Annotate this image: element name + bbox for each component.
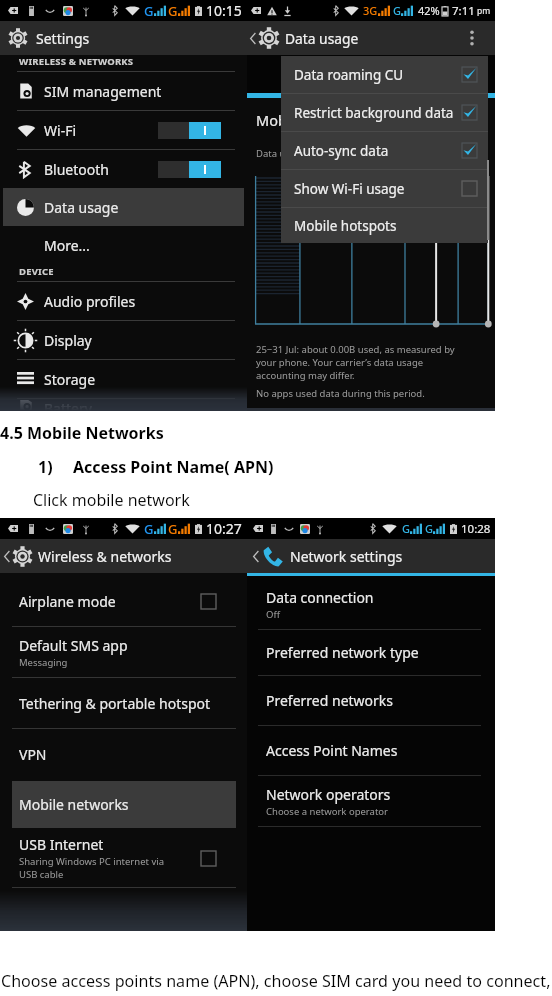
staticText: Click mobile network — [33, 489, 190, 511]
button[interactable]: Auto-sync data — [281, 132, 488, 169]
button[interactable]: Battery — [0, 399, 247, 411]
staticText: USB Internet — [19, 835, 104, 854]
button[interactable] — [158, 122, 221, 139]
button[interactable]: Default SMS app — [0, 627, 247, 677]
button[interactable]: Data connection — [258, 580, 495, 629]
button[interactable]: Storage — [0, 360, 247, 398]
staticText: Storage — [44, 370, 96, 389]
staticText: G — [168, 2, 178, 20]
staticText: Preferred networks — [266, 691, 394, 710]
staticText: Show Wi-Fi usage — [294, 180, 405, 198]
staticText: Access Point Name( APN) — [73, 456, 274, 478]
button[interactable]: Data roaming CU — [281, 56, 488, 93]
staticText: 7:11 — [452, 3, 475, 19]
staticText: DEVICE — [19, 265, 54, 278]
staticText: Settings — [36, 29, 90, 48]
staticText: Data usage cycle — [256, 147, 331, 160]
button[interactable]: SIM management — [0, 72, 247, 110]
staticText: Data usage — [44, 198, 119, 217]
staticText: More... — [44, 236, 90, 255]
staticText: Wireless & networks — [38, 547, 172, 566]
button[interactable]: Wi-Fi — [0, 111, 247, 149]
other: Unchecked — [201, 851, 216, 866]
staticText: Airplane mode — [19, 592, 116, 611]
button[interactable]: Preferred network type — [258, 630, 495, 675]
staticText: Data roaming CU — [294, 66, 404, 84]
button[interactable] — [158, 161, 221, 178]
staticText: Data connection — [266, 588, 374, 607]
staticText: 1) — [38, 456, 53, 478]
staticText: Sharing Windows PC internet via USB cabl… — [19, 855, 165, 881]
staticText: VPN — [19, 745, 47, 764]
staticText: 10:27 — [206, 519, 242, 538]
staticText: Restrict background data — [294, 104, 454, 122]
button[interactable]: Audio profiles — [0, 282, 247, 320]
button[interactable]: Show Wi-Fi usage — [281, 170, 488, 207]
staticText: Tethering & portable hotspot — [19, 694, 211, 713]
staticText: 10:15 — [206, 1, 242, 20]
button[interactable]: Preferred networks — [258, 676, 495, 725]
staticText: Choose a network operator — [266, 805, 388, 818]
button[interactable]: Mobile hotspots — [281, 208, 488, 243]
staticText: 3G — [363, 3, 378, 18]
staticText: Auto-sync data — [294, 142, 389, 160]
staticText: Battery — [44, 399, 92, 411]
button[interactable]: VPN — [0, 729, 247, 779]
button[interactable]: Network operators — [258, 776, 495, 826]
staticText: G — [402, 521, 410, 536]
button[interactable]: Display — [0, 321, 247, 359]
staticText: pm — [477, 5, 491, 17]
staticText: Display — [44, 331, 92, 350]
other: Unchecked — [462, 181, 477, 196]
button[interactable]: Access Point Names — [258, 726, 495, 775]
staticText: 4.5 Mobile Networks — [0, 422, 164, 444]
staticText: Mobile hotspots — [294, 217, 397, 235]
staticText: Network operators — [266, 785, 391, 804]
staticText: 42% — [418, 3, 440, 18]
button[interactable]: Tethering & portable hotspot — [0, 678, 247, 728]
staticText: G — [144, 520, 154, 538]
staticText: 10:28 — [461, 521, 491, 537]
staticText: Choose access points name (APN), choose … — [1, 970, 551, 992]
staticText: G — [425, 521, 433, 536]
button[interactable]: Restrict background data — [281, 94, 488, 131]
staticText: SIM management — [44, 82, 162, 101]
staticText: Wi-Fi — [44, 121, 77, 140]
button[interactable]: Airplane mode — [0, 576, 247, 626]
staticText: Audio profiles — [44, 292, 136, 311]
button[interactable]: USB Internet — [0, 829, 247, 887]
staticText: Network settings — [290, 547, 403, 566]
button[interactable]: Mobile networks — [12, 781, 236, 828]
staticText: WIRELESS & NETWORKS — [19, 55, 134, 68]
staticText: Mobile data — [256, 110, 337, 130]
staticText: Messaging — [19, 656, 68, 669]
button[interactable]: Bluetooth — [0, 150, 247, 188]
staticText: Data usage — [285, 29, 359, 48]
staticText: Bluetooth — [44, 160, 109, 179]
staticText: G — [144, 2, 154, 20]
button[interactable]: More... — [0, 226, 247, 264]
staticText: G — [168, 520, 178, 538]
staticText: Access Point Names — [266, 741, 398, 760]
staticText: Preferred network type — [266, 643, 419, 662]
staticText: 25−31 Jul: about 0.00B used, as measured… — [256, 343, 455, 382]
other: Checked — [462, 67, 477, 82]
staticText: Default SMS app — [19, 636, 128, 655]
staticText: No apps used data during this period. — [256, 387, 425, 400]
other: Unchecked — [201, 594, 216, 609]
staticText: G — [393, 3, 401, 18]
other: Checked — [462, 143, 477, 158]
button[interactable]: Data usage — [3, 188, 244, 226]
other: More options — [470, 30, 474, 46]
staticText: Mobile networks — [19, 795, 129, 814]
staticText: Off — [266, 608, 280, 621]
other: Checked — [462, 105, 477, 120]
